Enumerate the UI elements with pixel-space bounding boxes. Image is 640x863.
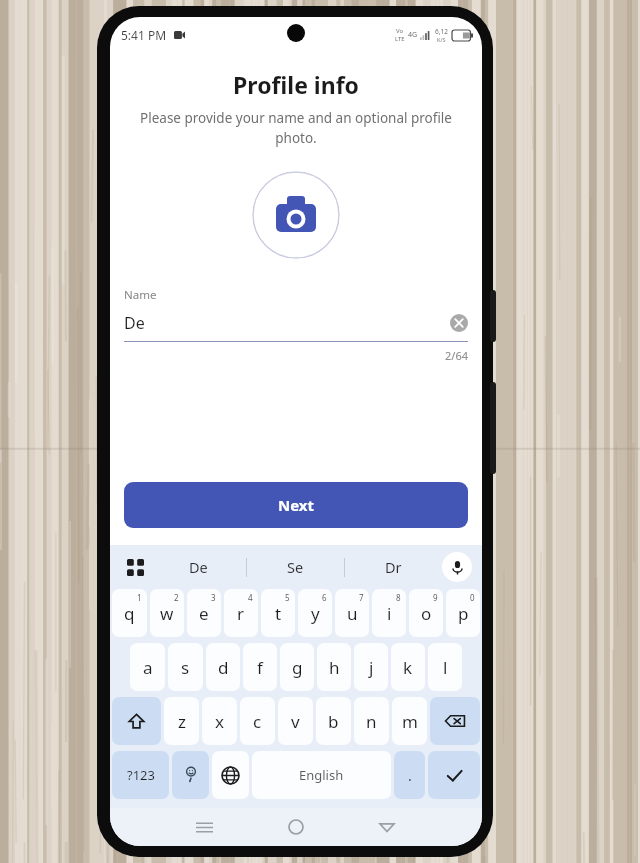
staticText: y bbox=[311, 602, 320, 625]
staticText: a bbox=[143, 656, 153, 679]
staticText: 7 bbox=[359, 592, 364, 603]
staticText: i bbox=[387, 602, 392, 625]
button[interactable]: De bbox=[124, 310, 468, 336]
button[interactable]: s bbox=[168, 643, 203, 691]
staticText: 2/64 bbox=[124, 348, 468, 363]
button[interactable]: w bbox=[150, 589, 184, 637]
staticText: 1 bbox=[137, 592, 142, 603]
staticText: g bbox=[292, 656, 303, 679]
staticText: v bbox=[291, 710, 300, 733]
button[interactable]: . bbox=[394, 751, 425, 799]
button[interactable]: m bbox=[392, 697, 427, 745]
button[interactable]: j bbox=[354, 643, 388, 691]
button[interactable]: b bbox=[316, 697, 351, 745]
button[interactable]: z bbox=[164, 697, 199, 745]
staticText: r bbox=[237, 602, 245, 625]
staticText: 5:41 PM bbox=[121, 27, 167, 43]
staticText: 8 bbox=[396, 592, 401, 603]
staticText: u bbox=[347, 602, 358, 625]
button[interactable]: p bbox=[446, 589, 480, 637]
button[interactable]: u bbox=[335, 589, 369, 637]
button[interactable]: a bbox=[130, 643, 165, 691]
staticText: 9 bbox=[433, 592, 438, 603]
button[interactable]: Add profile photo bbox=[252, 171, 340, 259]
button[interactable]: Change language bbox=[212, 751, 249, 799]
button[interactable]: x bbox=[202, 697, 237, 745]
staticText: m bbox=[402, 710, 418, 733]
button[interactable]: Se bbox=[247, 545, 344, 589]
staticText: ?123 bbox=[127, 766, 155, 784]
staticText: 4 bbox=[248, 592, 253, 603]
staticText: k bbox=[403, 656, 413, 679]
staticText: English bbox=[299, 766, 344, 784]
staticText: x bbox=[215, 710, 224, 733]
staticText: p bbox=[458, 602, 469, 625]
staticText: 3 bbox=[211, 592, 216, 603]
staticText: Dr bbox=[385, 557, 402, 577]
staticText: j bbox=[369, 656, 374, 679]
button[interactable]: h bbox=[317, 643, 351, 691]
button[interactable]: c bbox=[240, 697, 275, 745]
button[interactable]: Next bbox=[124, 482, 468, 528]
staticText: 0 bbox=[470, 592, 475, 603]
staticText: Please provide your name and an optional… bbox=[130, 109, 462, 147]
button[interactable]: t bbox=[261, 589, 295, 637]
button[interactable]: ?123 bbox=[112, 751, 169, 799]
button[interactable]: Shift bbox=[112, 697, 161, 745]
button[interactable]: Emoji bbox=[172, 751, 209, 799]
staticText: LTE bbox=[395, 35, 405, 43]
staticText: K/S bbox=[437, 36, 446, 43]
button[interactable]: Voice input bbox=[442, 552, 472, 582]
staticText: 4G bbox=[408, 30, 418, 40]
staticText: o bbox=[421, 602, 432, 625]
staticText: w bbox=[160, 602, 174, 625]
staticText: De bbox=[124, 312, 145, 334]
button[interactable]: Dr bbox=[345, 545, 442, 589]
button[interactable]: o bbox=[409, 589, 443, 637]
staticText: n bbox=[366, 710, 377, 733]
staticText: Profile info bbox=[110, 69, 482, 100]
staticText: s bbox=[181, 656, 190, 679]
button[interactable]: Home bbox=[250, 808, 341, 846]
staticText: 6 bbox=[322, 592, 327, 603]
staticText: Next bbox=[278, 495, 315, 515]
button[interactable]: n bbox=[354, 697, 389, 745]
button[interactable]: q bbox=[112, 589, 147, 637]
button[interactable]: r bbox=[224, 589, 258, 637]
staticText: q bbox=[124, 602, 135, 625]
button[interactable]: d bbox=[206, 643, 240, 691]
staticText: h bbox=[329, 656, 340, 679]
button[interactable]: v bbox=[278, 697, 313, 745]
staticText: Vo bbox=[396, 27, 404, 35]
button[interactable]: l bbox=[428, 643, 462, 691]
staticText: 6,12 bbox=[435, 27, 448, 36]
staticText: z bbox=[178, 710, 186, 733]
button[interactable]: Clear text bbox=[450, 314, 468, 332]
button[interactable]: i bbox=[372, 589, 406, 637]
button[interactable]: De bbox=[150, 545, 246, 589]
button[interactable]: Backspace bbox=[430, 697, 480, 745]
staticText: 2 bbox=[174, 592, 179, 603]
button[interactable]: English bbox=[252, 751, 391, 799]
button[interactable]: g bbox=[280, 643, 314, 691]
button[interactable]: Keyboard options bbox=[120, 552, 150, 582]
staticText: b bbox=[328, 710, 339, 733]
staticText: c bbox=[253, 710, 262, 733]
button[interactable]: e bbox=[187, 589, 221, 637]
button[interactable]: Back bbox=[341, 808, 432, 846]
button[interactable]: Done bbox=[428, 751, 480, 799]
staticText: f bbox=[257, 656, 263, 679]
staticText: l bbox=[443, 656, 448, 679]
staticText: d bbox=[218, 656, 229, 679]
staticText: t bbox=[275, 602, 282, 625]
staticText: Se bbox=[287, 557, 304, 577]
button[interactable]: k bbox=[391, 643, 425, 691]
button[interactable]: y bbox=[298, 589, 332, 637]
button[interactable]: f bbox=[243, 643, 277, 691]
button[interactable]: Recent apps bbox=[159, 808, 250, 846]
staticText: 5 bbox=[285, 592, 290, 603]
staticText: De bbox=[189, 557, 208, 577]
staticText: Name bbox=[124, 287, 157, 303]
staticText: . bbox=[408, 766, 412, 785]
staticText: e bbox=[199, 602, 209, 625]
